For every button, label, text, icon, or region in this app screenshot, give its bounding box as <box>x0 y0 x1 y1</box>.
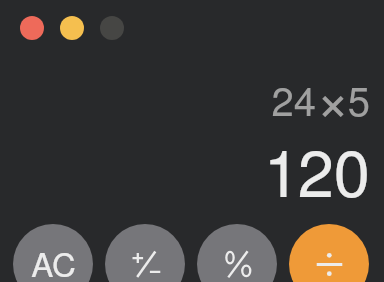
button[interactable]: All clear <box>13 224 93 282</box>
staticText: 20 <box>297 122 370 215</box>
staticText: 1 <box>263 122 300 215</box>
button[interactable]: Divide <box>289 224 369 282</box>
button[interactable]: Minimize window <box>60 16 84 40</box>
button[interactable]: Close window <box>20 16 44 40</box>
staticText: AC <box>31 239 76 282</box>
button[interactable]: Toggle sign <box>105 224 185 282</box>
staticText: 24×5 <box>271 54 370 137</box>
button[interactable]: Maximize window <box>100 16 124 40</box>
button[interactable]: Percent <box>197 224 277 282</box>
